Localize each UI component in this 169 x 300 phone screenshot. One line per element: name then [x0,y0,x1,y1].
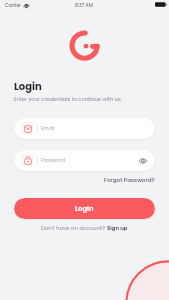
staticText: Email [41,125,55,132]
staticText: Password [41,157,66,164]
button[interactable]: Forgot Password? [104,174,155,186]
button[interactable]: Password [14,150,155,171]
button[interactable]: Email [14,118,155,139]
staticText: Login [14,79,42,93]
button[interactable]: Sign up [107,224,128,232]
staticText: Don't have an account? [41,224,107,232]
staticText: Login [75,204,94,214]
button[interactable]: Login [14,198,155,219]
staticText: Enter your credentials to continue with … [14,96,122,103]
staticText: Carrier [5,2,22,9]
button[interactable]: Show password [137,155,149,167]
staticText: 8:37 AM [75,2,93,9]
